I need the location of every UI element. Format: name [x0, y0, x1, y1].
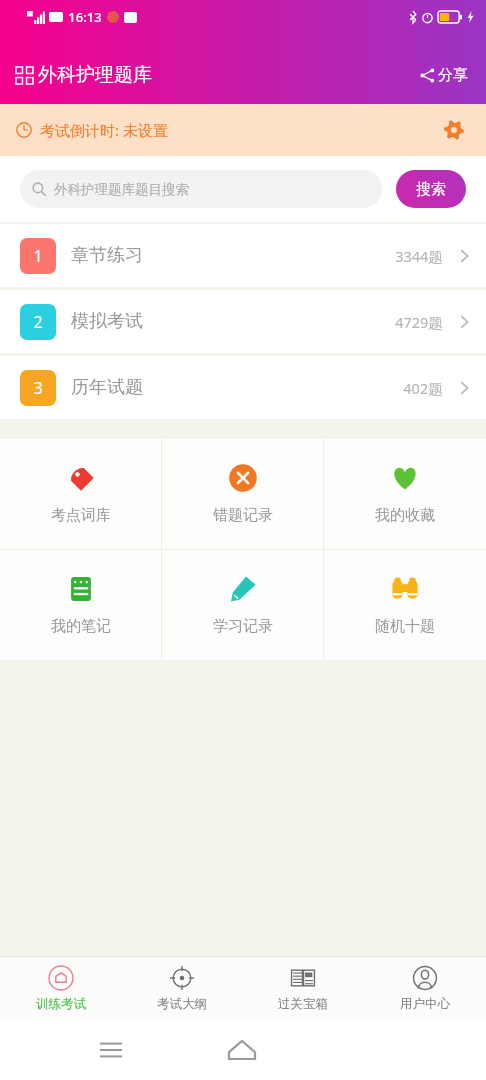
staticText: 外科护理题库题目搜索 — [54, 181, 189, 198]
button[interactable]: 考试倒计时: 未设置 — [0, 104, 486, 156]
staticText: 我的笔记 — [51, 617, 111, 636]
staticText: 分享 — [438, 66, 468, 85]
staticText: 16:13 — [68, 8, 102, 26]
staticText: 3344题 — [395, 246, 443, 266]
button[interactable]: Recents — [91, 1030, 131, 1070]
button[interactable]: 过关宝箱 — [242, 957, 364, 1020]
staticText: 训练考试 — [36, 996, 86, 1012]
staticText: 外科护理题库 — [38, 63, 152, 87]
staticText: 402题 — [403, 378, 443, 398]
button[interactable]: 1 — [0, 224, 486, 287]
button[interactable]: 搜索 — [396, 170, 466, 208]
staticText: 1 — [33, 245, 43, 267]
staticText: 章节练习 — [71, 244, 143, 267]
staticText: 用户中心 — [400, 996, 450, 1012]
staticText: 搜索 — [416, 180, 446, 199]
button[interactable]: 分享 — [418, 62, 470, 89]
button[interactable]: 考点词库 — [0, 439, 162, 549]
staticText: 错题记录 — [213, 506, 273, 525]
staticText: 随机十题 — [375, 617, 435, 636]
staticText: 学习记录 — [213, 617, 273, 636]
staticText: 历年试题 — [71, 376, 143, 399]
staticText: 3 — [33, 377, 43, 399]
button[interactable]: 学习记录 — [162, 550, 324, 660]
staticText: 考试大纲 — [157, 996, 207, 1012]
staticText: 考点词库 — [51, 506, 111, 525]
button[interactable]: 随机十题 — [324, 550, 486, 660]
staticText: 4729题 — [395, 312, 443, 332]
button[interactable]: 2 — [0, 290, 486, 353]
staticText: 考试倒计时: 未设置 — [40, 120, 168, 140]
button[interactable]: 我的收藏 — [324, 439, 486, 549]
button[interactable]: 3 — [0, 356, 486, 419]
button[interactable]: 错题记录 — [162, 439, 324, 549]
staticText: 过关宝箱 — [278, 996, 328, 1012]
staticText: 模拟考试 — [71, 310, 143, 333]
button[interactable]: 设置 — [438, 114, 470, 146]
button[interactable]: 训练考试 — [0, 957, 121, 1020]
button[interactable]: 考试大纲 — [121, 957, 242, 1020]
button[interactable]: Home — [222, 1030, 262, 1070]
staticText: 我的收藏 — [375, 506, 435, 525]
button[interactable]: 外科护理题库题目搜索 — [20, 170, 382, 208]
staticText: 2 — [33, 311, 43, 333]
button[interactable]: 用户中心 — [364, 957, 486, 1020]
button[interactable]: 我的笔记 — [0, 550, 162, 660]
